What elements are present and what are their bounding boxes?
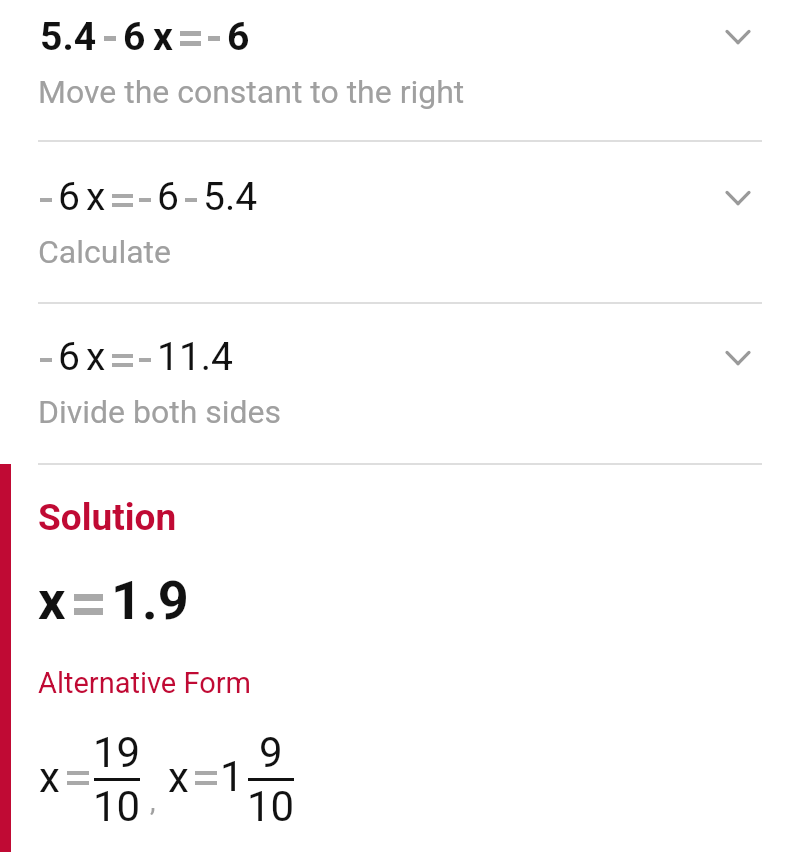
staticText: Divide both sides — [38, 393, 282, 431]
staticText: 19 — [93, 728, 141, 777]
staticText: x — [38, 569, 66, 632]
button[interactable]: Expand step — [714, 174, 762, 222]
staticText: Alternative Form — [38, 666, 251, 700]
button[interactable]: Solution — [0, 496, 800, 540]
button[interactable]: 5.4 — [0, 14, 800, 117]
staticText: 6 — [58, 174, 80, 220]
staticText: 6 — [157, 174, 179, 220]
staticText: 5.4 — [203, 174, 258, 220]
staticText: 10 — [93, 782, 141, 831]
staticText: x — [86, 174, 106, 220]
staticText: 10 — [247, 782, 295, 831]
staticText: x — [168, 753, 189, 802]
staticText: 1 — [220, 752, 244, 801]
button[interactable]: Expand step — [714, 334, 762, 382]
staticText: 5.4 — [40, 14, 97, 60]
staticText: x — [86, 334, 106, 380]
staticText: 11.4 — [157, 334, 234, 380]
staticText: Move the constant to the right — [38, 73, 465, 111]
staticText: Solution — [38, 496, 177, 539]
staticText: x — [39, 753, 60, 802]
staticText: 6 — [58, 334, 80, 380]
button[interactable]: Alternative Form — [0, 666, 800, 702]
staticText: , — [150, 785, 156, 818]
button[interactable]: x equals 19 over 10, x equals 1 and 9 ov… — [39, 728, 295, 831]
staticText: Calculate — [38, 233, 172, 271]
button[interactable]: Expand step — [714, 13, 762, 61]
button[interactable]: 6 — [0, 174, 800, 277]
staticText: 9 — [259, 728, 283, 777]
staticText: 6 — [227, 14, 250, 60]
staticText: 6 — [123, 14, 146, 60]
staticText: x — [153, 14, 173, 60]
staticText: 1.9 — [111, 569, 189, 632]
button[interactable]: 6 — [0, 334, 800, 437]
